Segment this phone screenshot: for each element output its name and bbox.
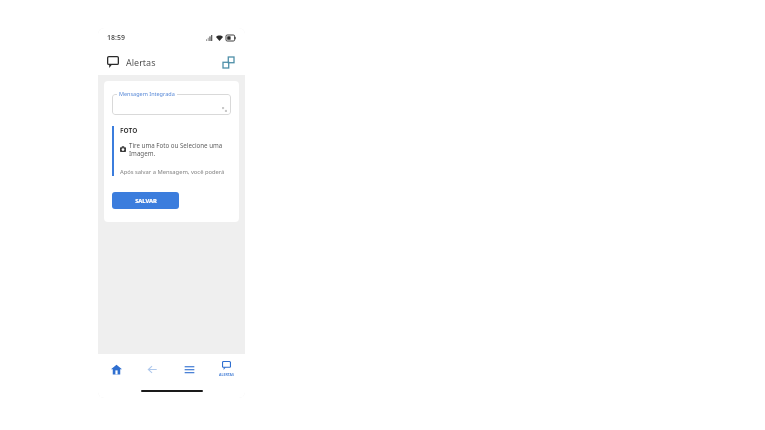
staticText: Mensagem Integrada	[119, 90, 175, 97]
staticText: SALVAR	[135, 197, 157, 205]
button[interactable]	[112, 94, 231, 115]
button[interactable]: Split screen	[220, 54, 236, 70]
staticText: ALERTAS	[219, 372, 234, 377]
button[interactable]: Back	[134, 354, 171, 384]
staticText: 18:59	[107, 33, 125, 43]
button[interactable]: SALVAR	[112, 192, 179, 209]
staticText: Após salvar a Mensagem, você poderá tira…	[120, 168, 231, 176]
staticText: FOTO	[120, 126, 138, 135]
staticText: Alertas	[126, 56, 156, 68]
button[interactable]: Menu	[171, 354, 208, 384]
staticText: Tire uma Foto ou Selecione uma Imagem.	[129, 141, 231, 157]
button[interactable]: Home	[98, 354, 134, 384]
button[interactable]: ALERTAS	[208, 354, 245, 384]
